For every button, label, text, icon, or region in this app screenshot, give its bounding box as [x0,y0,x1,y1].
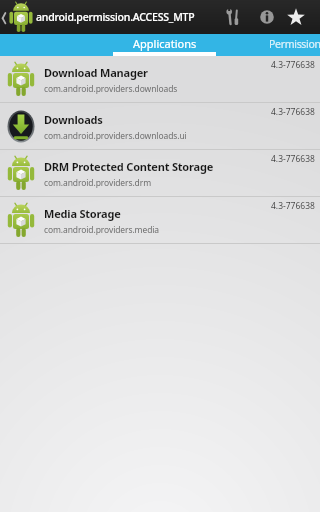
button[interactable] [220,0,254,34]
button[interactable]: Applications [113,34,216,56]
staticText: com.android.providers.media [44,224,160,236]
staticText: com.android.providers.downloads.ui [44,130,187,142]
staticText: DRM Protected Content Storage [44,159,213,174]
staticText: Downloads [44,112,103,127]
button[interactable]: Media Storage [0,197,320,244]
staticText: 4.3-776638 [271,153,315,165]
staticText: com.android.providers.drm [44,177,151,189]
button[interactable]: Permissions [216,34,320,56]
staticText: Permissions [269,37,320,51]
button[interactable]: android.permission.ACCESS_MTP [0,0,195,34]
staticText: Applications [133,36,197,51]
button[interactable] [254,0,288,34]
staticText: Media Storage [44,206,121,221]
button[interactable]: DRM Protected Content Storage [0,150,320,197]
button[interactable] [288,0,320,34]
staticText: Download Manager [44,65,148,80]
staticText: 4.3-776638 [271,59,315,71]
button[interactable]: Downloads [0,103,320,150]
button[interactable]: Download Manager [0,56,320,103]
staticText: 4.3-776638 [271,106,315,118]
staticText: android.permission.ACCESS_MTP [36,10,195,24]
staticText: com.android.providers.downloads [44,83,178,95]
staticText: 4.3-776638 [271,200,315,212]
